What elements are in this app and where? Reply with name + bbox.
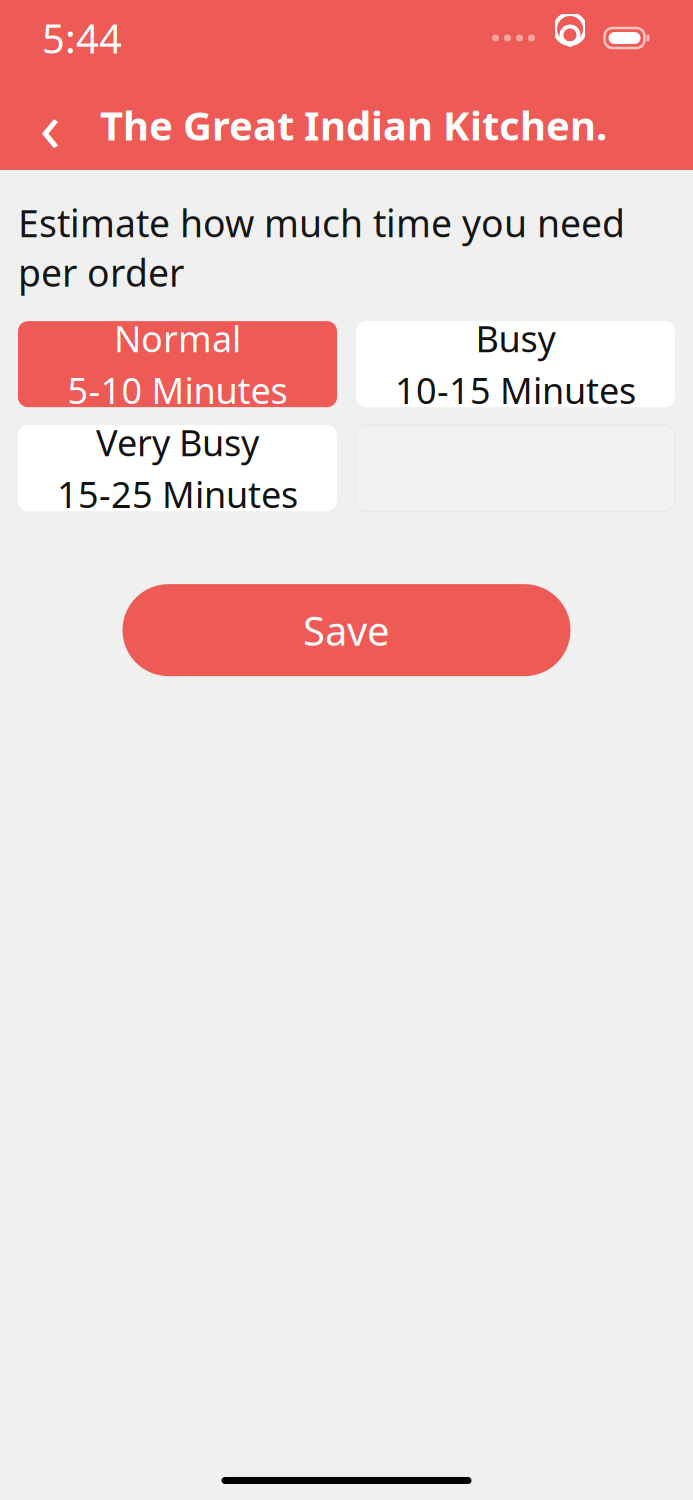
staticText: The Great Indian Kitchen.: [100, 98, 607, 151]
staticText: 10-15 Minutes: [395, 366, 636, 414]
staticText: Very Busy: [96, 418, 259, 466]
staticText: Estimate how much time you need per orde…: [18, 198, 625, 297]
staticText: Save: [303, 604, 390, 657]
button[interactable]: Back: [18, 93, 82, 157]
button[interactable]: Save: [122, 584, 570, 676]
staticText: 15-25 Minutes: [57, 470, 298, 518]
button[interactable]: Normal: [18, 321, 337, 407]
staticText: Busy: [475, 314, 555, 362]
staticText: Normal: [114, 314, 241, 362]
button[interactable]: Busy: [356, 321, 675, 407]
staticText: 5-10 Minutes: [67, 366, 287, 414]
staticText: 5:44: [42, 11, 122, 64]
staticText: ‹: [39, 79, 60, 171]
button[interactable]: Very Busy: [18, 425, 337, 511]
